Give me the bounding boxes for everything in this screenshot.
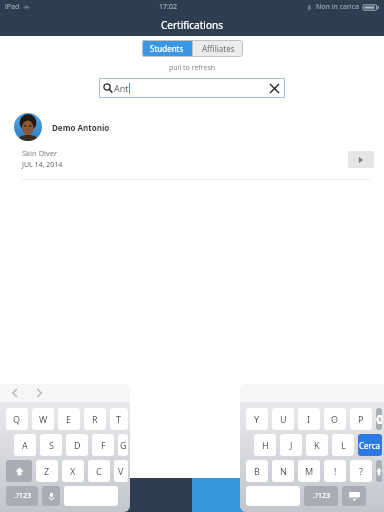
button[interactable]: Next field — [32, 386, 46, 400]
staticText: Affiliates — [202, 43, 235, 54]
button[interactable]: Hide keyboard — [342, 486, 366, 506]
staticText: Demo Antonio — [52, 122, 110, 133]
button[interactable]: U — [272, 408, 294, 430]
staticText: Certifications — [273, 500, 304, 507]
staticText: Non in carica — [316, 2, 359, 12]
staticText: R — [92, 413, 98, 425]
staticText: M — [305, 465, 314, 477]
staticText: .?123 — [14, 491, 31, 501]
button[interactable]: Affiliates — [193, 40, 243, 57]
staticText: F — [101, 439, 106, 451]
staticText: Q — [13, 413, 21, 425]
staticText: Y — [254, 413, 260, 425]
staticText: iPad — [5, 2, 20, 12]
button[interactable]: Shift — [6, 460, 32, 482]
button[interactable]: C — [88, 460, 110, 482]
button[interactable]: L — [332, 434, 354, 456]
staticText: Students — [150, 43, 184, 54]
staticText: Z — [44, 465, 50, 477]
button[interactable]: Shift — [376, 460, 382, 482]
button[interactable]: Qualifications — [0, 478, 192, 512]
staticText: U — [280, 413, 287, 425]
button[interactable] — [246, 486, 300, 506]
staticText: X — [70, 465, 76, 477]
button[interactable]: .?123 — [304, 486, 338, 506]
staticText: ! — [334, 465, 337, 477]
button[interactable]: T — [110, 408, 128, 430]
button[interactable]: M — [298, 460, 320, 482]
button[interactable] — [64, 486, 118, 506]
button[interactable]: D — [66, 434, 88, 456]
staticText: G — [120, 439, 127, 451]
staticText: V — [118, 465, 124, 477]
staticText: ? — [359, 465, 363, 477]
staticText: pull to refresh — [169, 63, 216, 73]
staticText: .?123 — [313, 491, 330, 501]
button[interactable]: Certifications — [192, 478, 384, 512]
button[interactable]: Y — [246, 408, 268, 430]
button[interactable]: B — [246, 460, 268, 482]
staticText: 17:02 — [159, 2, 177, 12]
button[interactable]: Clear search — [267, 81, 281, 95]
staticText: W — [39, 413, 48, 425]
button[interactable]: G — [118, 434, 128, 456]
staticText: Ant — [114, 82, 129, 94]
button[interactable]: A — [14, 434, 36, 456]
button[interactable]: W — [32, 408, 54, 430]
button[interactable]: ? — [350, 460, 372, 482]
button[interactable]: N — [272, 460, 294, 482]
staticText: P — [358, 413, 364, 425]
staticText: Cerca — [359, 440, 381, 451]
staticText: B — [254, 465, 260, 477]
button[interactable]: Play — [348, 151, 374, 168]
staticText: D — [74, 439, 81, 451]
button[interactable]: Ant — [99, 78, 285, 98]
staticText: Certifications — [161, 18, 223, 32]
button[interactable]: Previous field — [8, 386, 22, 400]
staticText: O — [331, 413, 339, 425]
button[interactable]: .?123 — [6, 486, 38, 506]
button[interactable]: Cerca — [358, 434, 382, 456]
button[interactable]: I — [298, 408, 320, 430]
button[interactable]: J — [280, 434, 302, 456]
button[interactable]: Z — [36, 460, 58, 482]
staticText: C — [96, 465, 102, 477]
button[interactable]: Q — [6, 408, 28, 430]
staticText: H — [262, 439, 269, 451]
staticText: L — [341, 439, 346, 451]
staticText: A — [22, 439, 28, 451]
staticText: JUL 14, 2014 — [22, 160, 63, 170]
button[interactable]: ! — [324, 460, 346, 482]
button[interactable]: Backspace — [376, 408, 382, 430]
button[interactable]: Students — [142, 40, 192, 57]
button[interactable]: E — [58, 408, 80, 430]
button[interactable]: P — [350, 408, 372, 430]
button[interactable]: X — [62, 460, 84, 482]
staticText: N — [280, 465, 287, 477]
staticText: J — [290, 439, 293, 451]
button[interactable]: Dictation — [42, 486, 60, 506]
button[interactable]: S — [40, 434, 62, 456]
button[interactable]: K — [306, 434, 328, 456]
button[interactable]: F — [92, 434, 114, 456]
button[interactable]: R — [84, 408, 106, 430]
staticText: E — [66, 413, 72, 425]
staticText: I — [307, 413, 311, 425]
staticText: S — [49, 439, 54, 451]
button[interactable]: O — [324, 408, 346, 430]
staticText: K — [314, 439, 320, 451]
staticText: Skin Diver — [22, 148, 58, 158]
button[interactable]: H — [254, 434, 276, 456]
staticText: T — [116, 413, 122, 425]
button[interactable]: V — [114, 460, 128, 482]
staticText: Qualifications — [80, 500, 113, 507]
